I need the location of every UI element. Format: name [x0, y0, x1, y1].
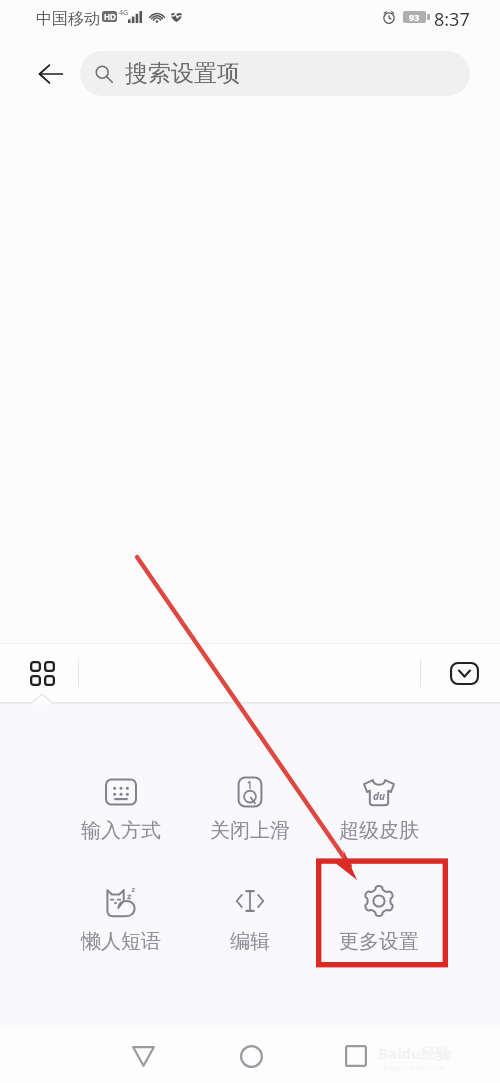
staticText: 输入方式: [81, 818, 161, 843]
staticText: 关闭上滑: [210, 818, 290, 843]
button[interactable]: Back: [115, 1028, 171, 1083]
staticText: HD: [104, 11, 116, 22]
staticText: 4G: [119, 8, 129, 18]
button[interactable]: 更多设置: [320, 884, 438, 954]
staticText: 更多设置: [339, 929, 419, 954]
staticText: 搜索设置项: [125, 59, 240, 88]
staticText: Baidu经验: [378, 1043, 451, 1063]
button[interactable]: 关闭上滑: [191, 775, 309, 843]
staticText: 懒人短语: [81, 929, 161, 954]
button[interactable]: Back: [28, 51, 73, 96]
staticText: 中国移动: [36, 9, 100, 29]
staticText: 8:37: [434, 7, 470, 32]
button[interactable]: 懒人短语: [62, 884, 180, 954]
staticText: 93: [409, 11, 420, 23]
button[interactable]: Recents: [328, 1028, 384, 1083]
button[interactable]: Hide keyboard: [442, 651, 486, 695]
staticText: 超级皮肤: [339, 818, 419, 843]
button[interactable]: Home: [223, 1028, 279, 1083]
button[interactable]: du: [320, 775, 438, 843]
button[interactable]: Keyboard toolbar menu: [20, 651, 64, 695]
staticText: du: [373, 789, 385, 803]
button[interactable]: 输入方式: [62, 775, 180, 843]
button[interactable]: 编辑: [191, 884, 309, 954]
button[interactable]: 搜索设置项: [80, 51, 470, 96]
staticText: 编辑: [230, 929, 270, 954]
